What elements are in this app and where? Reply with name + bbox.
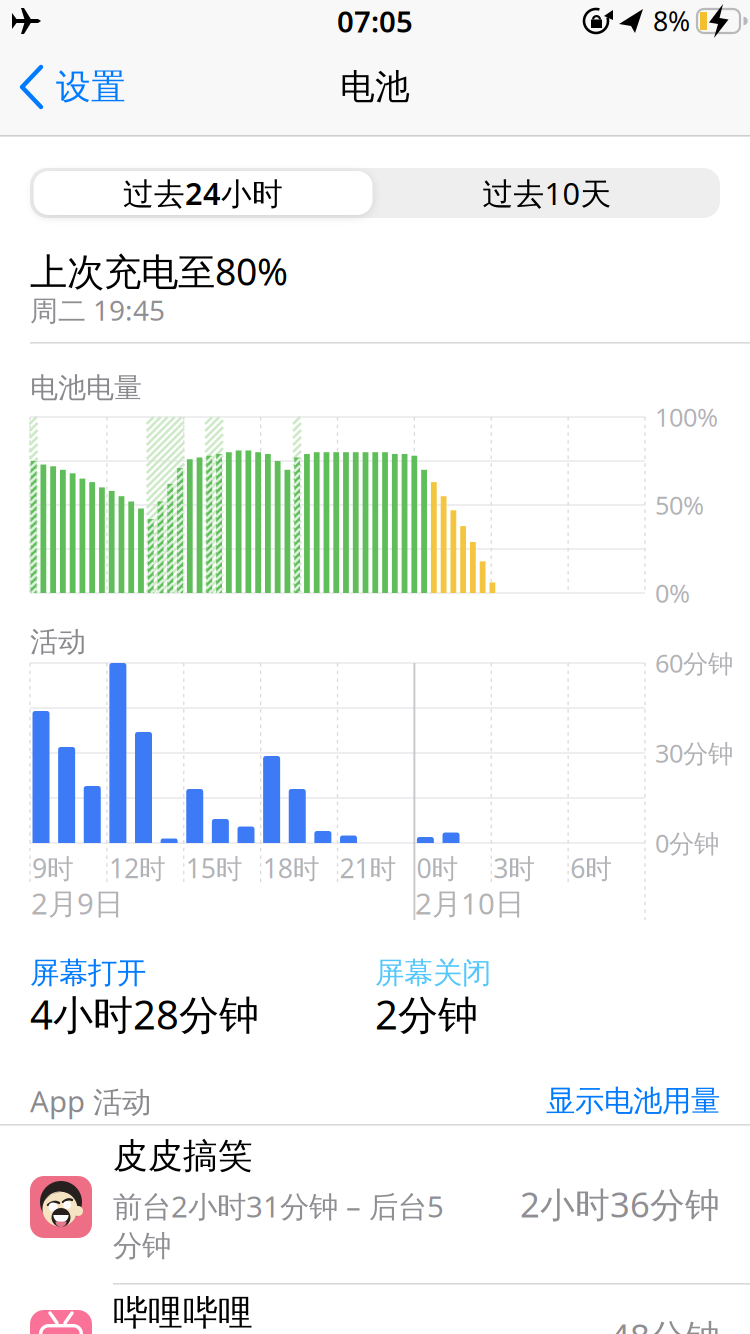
button[interactable]: 显示电池用量: [460, 1083, 720, 1119]
staticText: 9时: [32, 850, 74, 886]
staticText: 3时: [493, 850, 535, 886]
staticText: 50%: [655, 488, 704, 522]
staticText: 屏幕打开: [30, 955, 146, 991]
staticText: 2月10日: [415, 883, 524, 922]
staticText: 21时: [339, 850, 396, 886]
staticText: 30分钟: [655, 736, 733, 770]
button[interactable]: 哔哩哔哩: [0, 1285, 750, 1334]
staticText: 0时: [416, 850, 458, 886]
staticText: 屏幕关闭: [375, 955, 491, 991]
staticText: 100%: [655, 400, 718, 434]
staticText: 2分钟: [375, 987, 478, 1040]
staticText: 皮皮搞笑: [113, 1135, 253, 1177]
button[interactable]: 过去24小时: [31, 168, 374, 218]
staticText: 显示电池用量: [546, 1083, 720, 1119]
staticText: 18时: [263, 850, 320, 886]
button[interactable]: 返回设置: [14, 65, 224, 109]
staticText: 周二 19:45: [30, 291, 165, 329]
staticText: 15时: [186, 850, 243, 886]
staticText: 12时: [109, 850, 166, 886]
staticText: 过去24小时: [123, 173, 283, 213]
staticText: 哔哩哔哩: [113, 1292, 253, 1334]
staticText: App 活动: [30, 1081, 151, 1120]
staticText: 2月9日: [31, 883, 123, 922]
staticText: 60分钟: [655, 646, 733, 680]
staticText: 2小时36分钟: [520, 1181, 720, 1227]
staticText: 活动: [30, 625, 86, 659]
button[interactable]: 皮皮搞笑: [0, 1126, 750, 1284]
staticText: 电池电量: [30, 371, 142, 405]
staticText: 0分钟: [655, 826, 719, 860]
staticText: 前台2小时31分钟 – 后台5: [113, 1186, 444, 1225]
staticText: 分钟: [113, 1228, 171, 1264]
staticText: 电池: [340, 66, 410, 108]
staticText: 07:05: [337, 1, 413, 40]
staticText: 4小时28分钟: [30, 987, 259, 1040]
staticText: 设置: [56, 66, 126, 108]
staticText: 0%: [655, 576, 690, 610]
staticText: 过去10天: [482, 173, 611, 213]
staticText: 6时: [570, 850, 612, 886]
staticText: 48分钟: [610, 1313, 720, 1334]
staticText: 上次充电至80%: [30, 246, 288, 296]
staticText: 8%: [653, 3, 690, 39]
button[interactable]: 过去10天: [375, 168, 718, 218]
